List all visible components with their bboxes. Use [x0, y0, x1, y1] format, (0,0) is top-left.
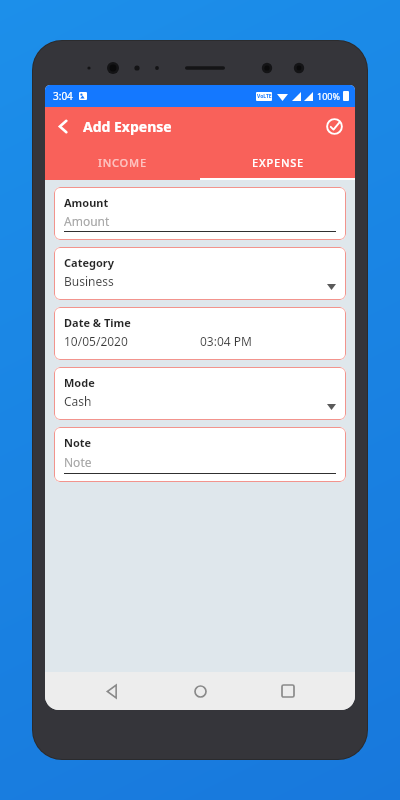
staticText: Mode	[64, 375, 95, 390]
staticText: Amount	[64, 213, 110, 229]
button[interactable]: Home	[179, 672, 221, 710]
staticText: Note	[64, 454, 92, 470]
button[interactable]: Amount	[54, 187, 346, 240]
button[interactable]: Back	[47, 110, 79, 142]
button[interactable]: EXPENSE	[200, 145, 355, 180]
staticText: Note	[64, 435, 92, 450]
button[interactable]: Mode	[54, 367, 346, 420]
button[interactable]: Recent apps	[267, 672, 309, 710]
staticText: Business	[64, 273, 114, 289]
staticText: Amount	[64, 195, 109, 210]
button[interactable]: Back	[91, 672, 133, 710]
button[interactable]: Category	[54, 247, 346, 300]
button[interactable]: Save	[319, 111, 349, 141]
staticText: 3:04	[53, 89, 73, 103]
staticText: Category	[64, 255, 115, 270]
button[interactable]: Date & Time	[54, 307, 346, 360]
button[interactable]: Note	[54, 427, 346, 482]
staticText: 100%	[317, 90, 340, 102]
button[interactable]: INCOME	[45, 145, 200, 180]
staticText: VoLTE	[257, 93, 272, 100]
staticText: Cash	[64, 393, 92, 409]
staticText: INCOME	[98, 155, 147, 170]
staticText: Add Expense	[83, 117, 172, 136]
staticText: 03:04 PM	[200, 333, 252, 349]
staticText: EXPENSE	[252, 155, 304, 170]
staticText: 10/05/2020	[64, 333, 128, 349]
staticText: Date & Time	[64, 315, 131, 330]
